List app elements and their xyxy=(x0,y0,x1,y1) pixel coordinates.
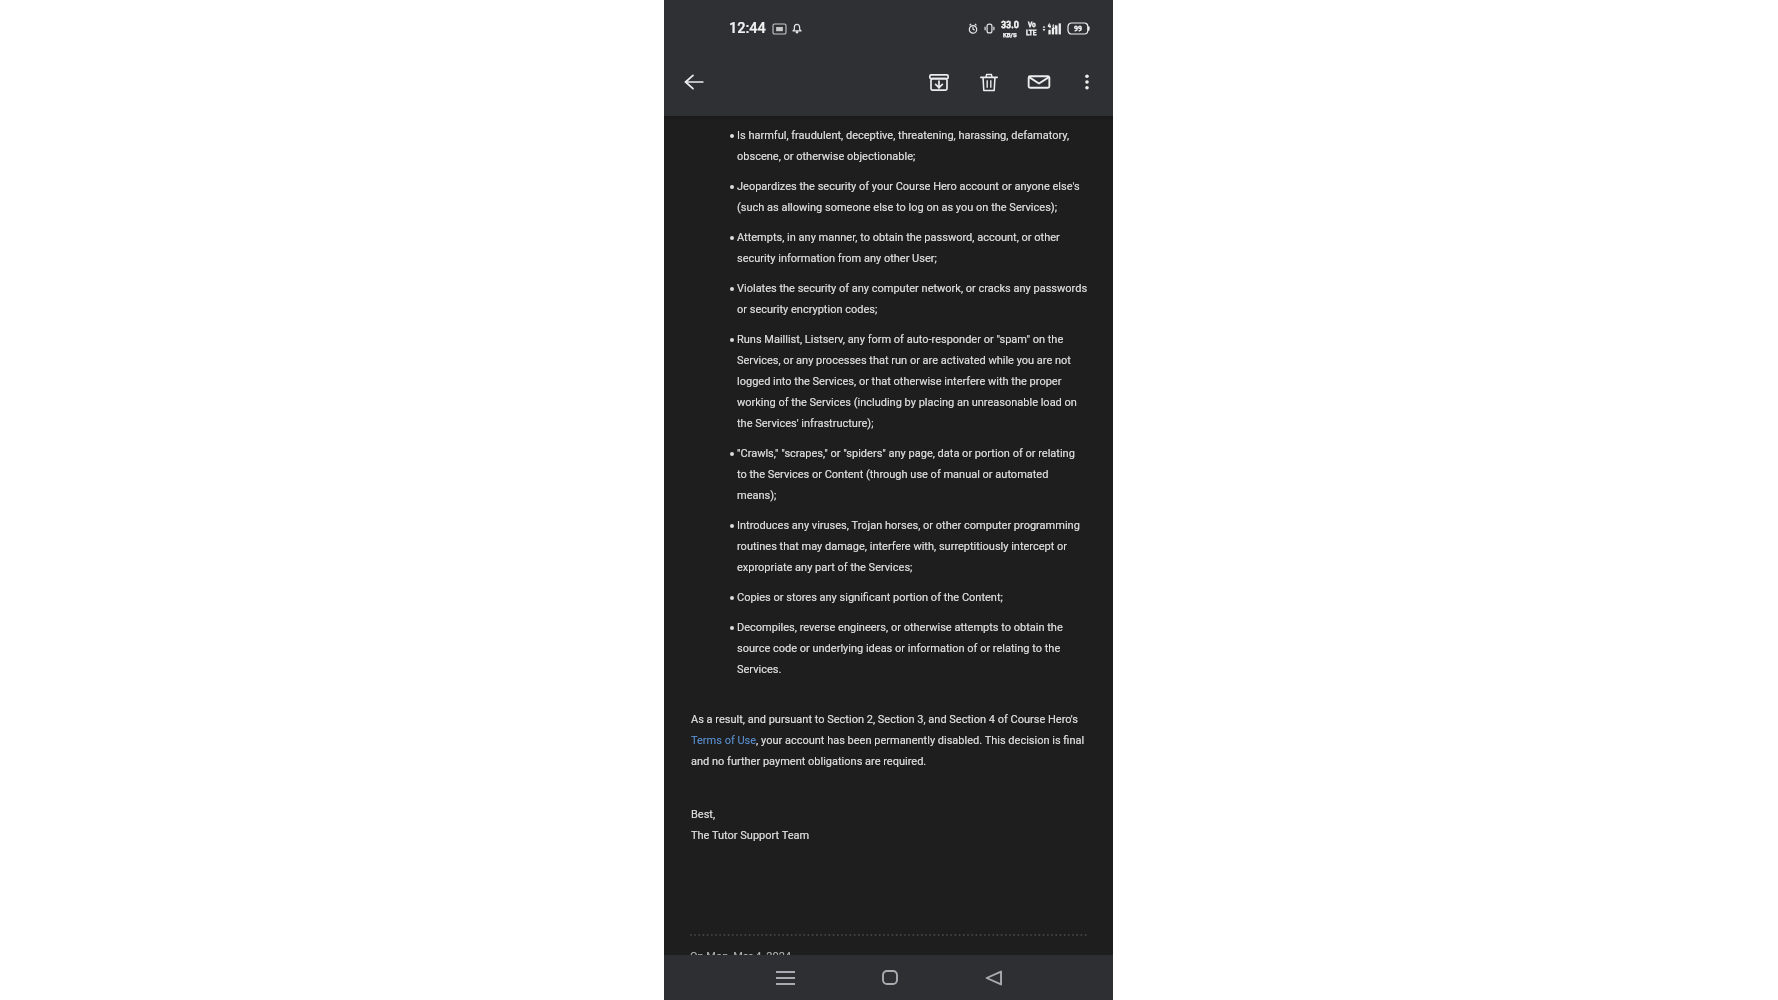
staticText: Jeopardizes the security of your Course … xyxy=(737,173,1080,215)
staticText: As a result, and pursuant to Section 2, … xyxy=(691,706,1085,769)
staticText: 99 xyxy=(1074,25,1082,33)
staticText: Is harmful, fraudulent, deceptive, threa… xyxy=(737,122,1070,164)
staticText: On Mon, Mar 4, 2024 xyxy=(690,943,792,955)
staticText: KB/S xyxy=(1003,31,1017,38)
staticText: Runs Maillist, Listserv, any form of aut… xyxy=(737,326,1077,431)
button[interactable]: More options xyxy=(1064,59,1110,105)
button[interactable]: Back xyxy=(670,58,718,106)
button[interactable]: Recent apps xyxy=(761,955,809,1000)
button[interactable]: Back xyxy=(970,955,1018,1000)
staticText: 12:44 xyxy=(729,20,766,37)
button[interactable]: Home xyxy=(866,955,914,1000)
button[interactable]: Mark as unread xyxy=(1014,58,1064,106)
staticText: LTE xyxy=(1026,29,1037,37)
staticText: Vo xyxy=(1028,21,1036,29)
staticText: "Crawls," "scrapes," or "spiders" any pa… xyxy=(737,440,1075,503)
button[interactable]: Delete xyxy=(964,58,1014,106)
staticText: Introduces any viruses, Trojan horses, o… xyxy=(737,512,1080,575)
staticText: Best, The Tutor Support Team xyxy=(691,801,810,843)
staticText: Violates the security of any computer ne… xyxy=(737,275,1088,317)
staticText: 33.0 xyxy=(1001,20,1019,31)
staticText: Decompiles, reverse engineers, or otherw… xyxy=(737,614,1063,677)
staticText: Copies or stores any significant portion… xyxy=(737,584,1003,605)
staticText: Attempts, in any manner, to obtain the p… xyxy=(737,224,1060,266)
button[interactable]: Archive xyxy=(914,58,964,106)
